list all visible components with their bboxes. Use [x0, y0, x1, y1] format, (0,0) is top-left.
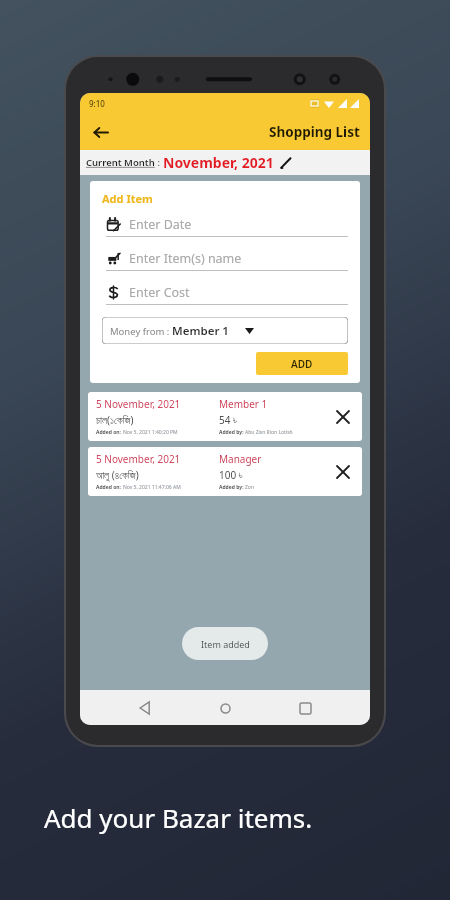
staticText: চাল(১কেজি): [96, 413, 134, 427]
staticText: Shopping List: [269, 123, 360, 141]
button[interactable]: ADD: [256, 352, 348, 375]
staticText: Manager: [219, 452, 262, 466]
button[interactable]: Back: [86, 118, 114, 146]
staticText: আলু (৪কেজি): [96, 468, 139, 482]
button[interactable]: Delete item: [330, 404, 356, 430]
button[interactable]: Recents: [290, 693, 320, 723]
button[interactable]: Enter Item(s) name: [102, 249, 348, 271]
button[interactable]: Back: [130, 693, 160, 723]
staticText: Money from :: [110, 325, 172, 338]
staticText: Nov 5, 2021 1:40:20 PM: [123, 429, 178, 436]
button[interactable]: Delete item: [330, 459, 356, 485]
button[interactable]: Money from :: [102, 317, 348, 344]
staticText: ADD: [291, 357, 313, 371]
staticText: Zon: [245, 484, 254, 491]
button[interactable]: Edit month: [279, 156, 293, 170]
button[interactable]: 5 November, 2021: [88, 392, 362, 441]
button[interactable]: Enter Date: [102, 215, 348, 237]
staticText: Item added: [201, 638, 250, 650]
staticText: Added by:: [219, 484, 245, 491]
staticText: Added by:: [219, 429, 245, 436]
staticText: Add your Bazar items.: [44, 800, 313, 835]
staticText: Enter Date: [129, 216, 192, 233]
button[interactable]: Home: [210, 693, 240, 723]
staticText: Current Month: [86, 156, 155, 169]
staticText: Add Item: [102, 191, 153, 206]
staticText: Member 1: [219, 397, 268, 411]
staticText: Added on:: [96, 429, 123, 436]
staticText: November, 2021: [163, 153, 274, 172]
staticText: Enter Cost: [129, 284, 190, 301]
staticText: 100 ৳: [219, 468, 243, 482]
staticText: Added on:: [96, 484, 123, 491]
staticText: 5 November, 2021: [96, 452, 181, 466]
staticText: 54 ৳: [219, 413, 237, 427]
staticText: Member 1: [172, 323, 229, 339]
button[interactable]: 5 November, 2021: [88, 447, 362, 496]
staticText: Enter Item(s) name: [129, 250, 242, 267]
staticText: :: [155, 156, 163, 169]
staticText: Nov 5, 2021 11:47:06 AM: [123, 484, 181, 491]
staticText: 5 November, 2021: [96, 397, 181, 411]
staticText: Abu Zisn Rion Lotish: [245, 429, 293, 436]
button[interactable]: Enter Cost: [102, 283, 348, 305]
staticText: 9:10: [89, 98, 105, 109]
